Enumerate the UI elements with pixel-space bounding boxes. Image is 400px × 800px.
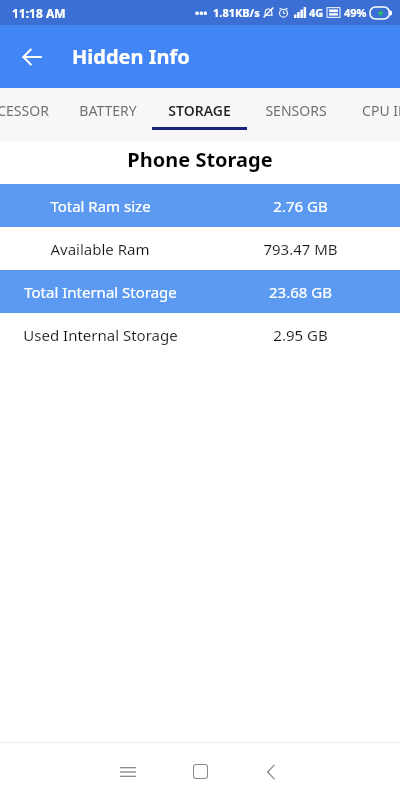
staticText: 793.47 MB bbox=[263, 239, 338, 259]
button[interactable]: STORAGE bbox=[152, 88, 247, 142]
staticText: Used Internal Storage bbox=[23, 325, 178, 345]
button[interactable]: Back bbox=[8, 33, 56, 81]
staticText: Phone Storage bbox=[0, 146, 400, 173]
staticText: ••• bbox=[195, 5, 208, 20]
staticText: STORAGE bbox=[168, 101, 231, 120]
button[interactable]: Total Ram size bbox=[0, 184, 400, 227]
staticText: Total Ram size bbox=[50, 196, 151, 216]
staticText: 23.68 GB bbox=[269, 282, 332, 302]
button[interactable]: CPU INFO bbox=[344, 88, 400, 142]
staticText: Hidden Info bbox=[72, 43, 190, 70]
button[interactable]: BATTERY bbox=[64, 88, 152, 142]
staticText: 4G bbox=[309, 5, 324, 20]
button[interactable]: Total Internal Storage bbox=[0, 270, 400, 313]
button[interactable]: PROCESSOR bbox=[0, 88, 64, 142]
button[interactable]: Home bbox=[164, 743, 236, 800]
button[interactable]: SENSORS bbox=[247, 88, 344, 142]
staticText: 2.76 GB bbox=[273, 196, 328, 216]
staticText: BATTERY bbox=[79, 101, 137, 120]
staticText: 1.81KB/s bbox=[213, 5, 260, 20]
staticText: CPU INFO bbox=[362, 101, 400, 120]
button[interactable]: Recent apps bbox=[92, 743, 164, 800]
staticText: PROCESSOR bbox=[0, 101, 49, 120]
button[interactable]: Used Internal Storage bbox=[0, 313, 400, 356]
staticText: 11:18 AM bbox=[12, 5, 66, 21]
button[interactable]: Available Ram bbox=[0, 227, 400, 270]
staticText: SENSORS bbox=[265, 101, 327, 120]
staticText: Total Internal Storage bbox=[24, 282, 177, 302]
staticText: Available Ram bbox=[50, 239, 150, 259]
button[interactable]: Back bbox=[236, 743, 308, 800]
staticText: 49% bbox=[344, 5, 367, 20]
staticText: 2.95 GB bbox=[273, 325, 328, 345]
